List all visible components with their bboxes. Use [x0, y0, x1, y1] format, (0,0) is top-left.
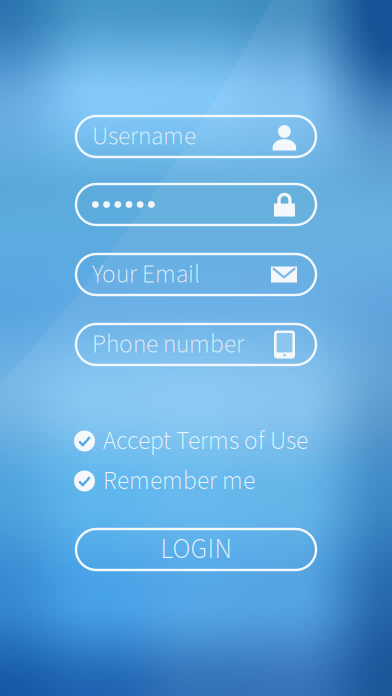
- button[interactable]: LOGIN: [76, 529, 316, 570]
- button[interactable]: Username: [76, 116, 316, 157]
- button[interactable]: Remember me: [74, 470, 318, 492]
- staticText: Username: [92, 118, 196, 155]
- button[interactable]: Your Email: [76, 254, 316, 295]
- staticText: Phone number: [92, 326, 244, 363]
- staticText: Accept Terms of Use: [103, 423, 308, 459]
- button[interactable]: Phone number: [76, 324, 316, 365]
- button[interactable]: Accept Terms of Use: [74, 430, 318, 452]
- staticText: Remember me: [103, 463, 255, 499]
- button[interactable]: [76, 184, 316, 225]
- staticText: Your Email: [92, 256, 200, 293]
- staticText: LOGIN: [160, 530, 231, 569]
